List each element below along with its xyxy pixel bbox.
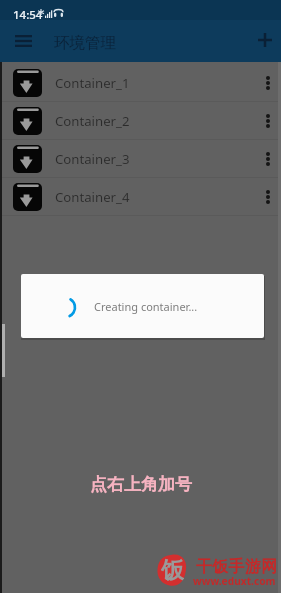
staticText: Container_2 <box>55 112 130 130</box>
staticText: Container_3 <box>55 150 130 168</box>
staticText: 饭 <box>161 556 184 584</box>
button[interactable]: More options <box>255 64 281 101</box>
button[interactable]: More options <box>255 178 281 215</box>
staticText: 干饭手游网 <box>196 557 277 577</box>
button[interactable]: Open navigation menu <box>7 25 40 57</box>
staticText: 点右上角加号 <box>90 474 192 495</box>
staticText: 14:54 <box>13 7 43 23</box>
button[interactable]: More options <box>255 140 281 177</box>
button[interactable]: Add container <box>249 24 281 56</box>
staticText: 环境管理 <box>54 33 116 53</box>
button[interactable]: More options <box>255 102 281 139</box>
staticText: Container_1 <box>55 74 130 92</box>
button[interactable]: Container_2 <box>0 102 281 139</box>
button[interactable]: Container_1 <box>0 64 281 101</box>
button[interactable]: Container_4 <box>0 178 281 215</box>
staticText: www.eduxt.com <box>193 574 276 588</box>
staticText: Container_4 <box>55 188 130 206</box>
staticText: Creating container... <box>94 299 198 314</box>
button[interactable]: Container_3 <box>0 140 281 177</box>
